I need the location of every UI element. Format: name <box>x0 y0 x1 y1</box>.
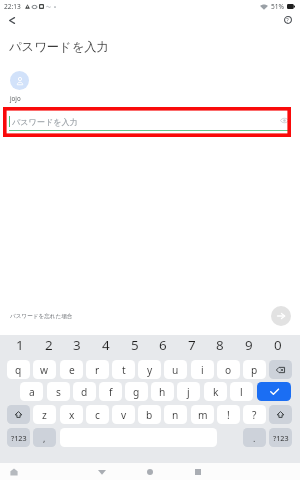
button[interactable]: a <box>20 382 43 401</box>
button[interactable]: , <box>33 428 56 447</box>
button[interactable]: 9 <box>235 334 263 356</box>
button[interactable]: l <box>230 382 253 401</box>
staticText: 9 <box>245 336 253 354</box>
staticText: b <box>146 408 153 422</box>
button[interactable]: u <box>164 360 187 379</box>
button[interactable]: 8 <box>206 334 234 356</box>
staticText: ? <box>286 16 289 24</box>
button[interactable]: パスワードを入力 <box>9 108 289 132</box>
staticText: パスワードを入力 <box>9 39 109 54</box>
button[interactable]: e <box>60 360 83 379</box>
button[interactable]: r <box>86 360 109 379</box>
button[interactable]: t <box>112 360 135 379</box>
staticText: 3 <box>73 336 81 354</box>
staticText: jojo <box>10 94 21 102</box>
button[interactable]: Switch keyboard <box>5 463 23 480</box>
staticText: v <box>121 408 127 422</box>
button[interactable]: . <box>243 428 266 447</box>
button[interactable]: ? <box>243 405 266 424</box>
button[interactable]: ! <box>217 405 240 424</box>
button[interactable]: y <box>138 360 161 379</box>
staticText: x <box>69 408 75 422</box>
button[interactable]: z <box>33 405 56 424</box>
button[interactable]: Account <box>10 71 29 90</box>
staticText: y <box>147 363 153 377</box>
staticText: 8 <box>216 336 224 354</box>
button[interactable]: c <box>86 405 109 424</box>
button[interactable]: g <box>125 382 148 401</box>
staticText: f <box>109 385 113 399</box>
button[interactable]: パスワードを忘れた場合 <box>10 313 73 320</box>
button[interactable]: o <box>217 360 240 379</box>
staticText: 0 <box>274 336 282 354</box>
button[interactable]: i <box>191 360 214 379</box>
staticText: h <box>159 385 166 399</box>
button[interactable]: b <box>138 405 161 424</box>
staticText: 51% <box>271 2 285 11</box>
button[interactable]: d <box>73 382 96 401</box>
button[interactable]: shift <box>269 405 292 424</box>
button[interactable]: n <box>164 405 187 424</box>
button[interactable]: k <box>204 382 227 401</box>
staticText: d <box>81 385 88 399</box>
button[interactable]: ?123 <box>7 428 30 447</box>
staticText: ? <box>252 408 257 422</box>
button[interactable]: m <box>191 405 214 424</box>
staticText: パスワードを入力 <box>12 117 78 127</box>
button[interactable]: Next <box>271 306 291 326</box>
button[interactable]: x <box>60 405 83 424</box>
staticText: m <box>198 408 208 422</box>
button[interactable]: enter <box>257 382 291 401</box>
button[interactable]: w <box>33 360 56 379</box>
button[interactable]: h <box>151 382 174 401</box>
button[interactable]: q <box>7 360 30 379</box>
staticText: l <box>240 385 243 399</box>
staticText: k <box>213 385 219 399</box>
button[interactable]: s <box>47 382 70 401</box>
staticText: ! <box>227 408 230 422</box>
staticText: パスワードを忘れた場合 <box>10 313 73 320</box>
staticText: c <box>95 408 100 422</box>
staticText: 7 <box>188 336 196 354</box>
staticText: z <box>42 408 47 422</box>
button[interactable]: Recents <box>188 463 208 480</box>
staticText: n <box>172 408 179 422</box>
button[interactable]: 5 <box>121 334 149 356</box>
button[interactable]: j <box>177 382 200 401</box>
staticText: w <box>40 363 49 377</box>
staticText: ?123 <box>273 433 289 443</box>
staticText: r <box>95 363 100 377</box>
staticText: i <box>201 363 204 377</box>
button[interactable]: 1 <box>6 334 34 356</box>
staticText: j <box>187 385 190 399</box>
staticText: p <box>251 363 258 377</box>
button[interactable]: Back <box>0 6 24 34</box>
button[interactable]: f <box>99 382 122 401</box>
staticText: 2 <box>45 336 53 354</box>
button[interactable]: p <box>243 360 266 379</box>
staticText: u <box>172 363 179 377</box>
button[interactable]: 4 <box>92 334 120 356</box>
button[interactable]: 7 <box>178 334 206 356</box>
button[interactable]: Home <box>140 463 160 480</box>
staticText: o <box>225 363 232 377</box>
staticText: e <box>69 363 75 377</box>
button[interactable]: 2 <box>35 334 63 356</box>
staticText: 22:13 <box>4 2 21 11</box>
staticText: s <box>56 385 61 399</box>
staticText: 1 <box>16 336 24 354</box>
button[interactable]: shift <box>7 405 30 424</box>
button[interactable]: 0 <box>264 334 292 356</box>
staticText: t <box>122 363 126 377</box>
staticText: 5 <box>131 336 139 354</box>
button[interactable]: Back <box>92 463 112 480</box>
button[interactable]: 3 <box>63 334 91 356</box>
button[interactable]: v <box>112 405 135 424</box>
button[interactable]: Help <box>275 6 300 34</box>
button[interactable]: ?123 <box>269 428 292 447</box>
staticText: a <box>29 385 35 399</box>
button[interactable]: 6 <box>149 334 177 356</box>
staticText: 6 <box>159 336 167 354</box>
button[interactable]: bksp <box>269 360 292 379</box>
